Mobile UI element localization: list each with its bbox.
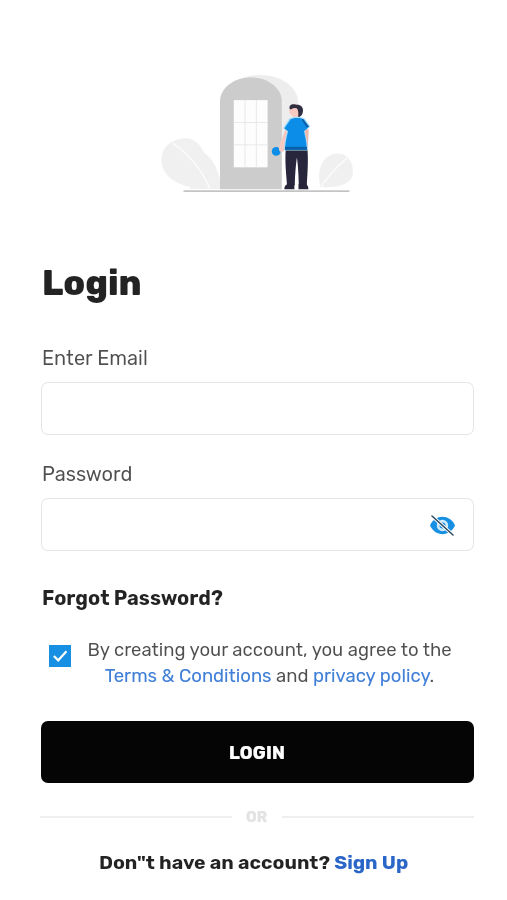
staticText: By creating your account, you agree to t… <box>87 639 452 687</box>
button[interactable]: LOGIN <box>41 721 474 783</box>
staticText: Forgot Password? <box>42 586 223 610</box>
button[interactable]: Show password <box>427 510 457 540</box>
staticText: OR <box>246 808 268 826</box>
staticText: Login <box>42 262 142 303</box>
button[interactable]: Don"t have an account? Sign Up <box>99 851 409 874</box>
staticText: LOGIN <box>229 742 286 763</box>
button[interactable]: Forgot Password? <box>42 586 223 610</box>
staticText: Don"t have an account? Sign Up <box>99 851 409 874</box>
staticText: Enter Email <box>42 346 148 370</box>
button[interactable]: Agree to terms and conditions <box>49 645 71 667</box>
button[interactable]: Password input <box>42 499 473 550</box>
button[interactable]: By creating your account, you agree to t… <box>87 639 452 687</box>
staticText: Password <box>42 462 133 486</box>
